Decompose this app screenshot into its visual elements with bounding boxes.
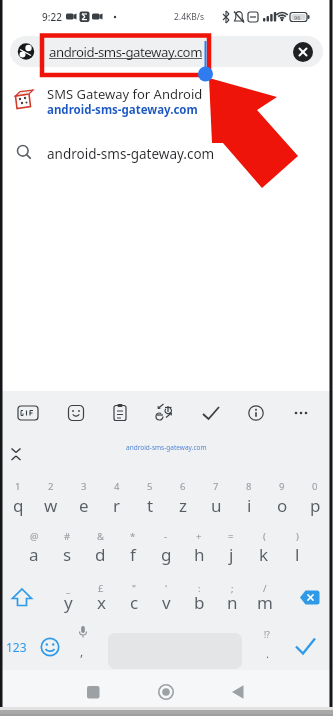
button[interactable]: android-sms-gateway.com (10, 36, 323, 67)
button[interactable]: k (248, 540, 280, 568)
button[interactable]: SMS Gateway for Android (0, 80, 333, 124)
staticText: p (310, 494, 321, 517)
button[interactable] (240, 399, 272, 427)
staticText: £ (98, 582, 104, 595)
button[interactable]: android-sms-gateway.com (0, 138, 333, 168)
button[interactable] (149, 399, 181, 427)
staticText: ; (231, 582, 234, 595)
button[interactable]: y (52, 588, 84, 616)
staticText: / (263, 582, 267, 595)
staticText: 9 (279, 480, 285, 493)
staticText: = (228, 530, 234, 543)
button[interactable] (228, 682, 248, 702)
staticText: + (196, 530, 202, 543)
button[interactable]: c (118, 588, 150, 616)
staticText: z (179, 494, 187, 517)
button[interactable] (195, 399, 227, 427)
staticText: j (229, 543, 234, 566)
button[interactable] (104, 399, 136, 427)
button[interactable]: p (299, 491, 331, 519)
staticText: 5 (147, 480, 153, 493)
button[interactable]: w (35, 491, 67, 519)
staticText: a (29, 543, 39, 566)
button[interactable] (84, 682, 104, 702)
staticText: 7 (213, 480, 219, 493)
staticText: 9:22 (42, 10, 62, 24)
staticText: : (198, 582, 201, 595)
button[interactable]: g (150, 540, 182, 568)
staticText: 123 (6, 639, 27, 655)
staticText: @ (30, 530, 39, 543)
button[interactable]: j (215, 540, 247, 568)
staticText: ) (296, 530, 299, 543)
staticText: android-sms-gateway.com (47, 102, 198, 118)
button[interactable] (156, 682, 176, 702)
staticText: h (194, 543, 205, 566)
staticText: g (161, 543, 172, 566)
staticText: ' (165, 582, 168, 595)
button[interactable]: o (266, 491, 298, 519)
staticText: s (63, 543, 72, 566)
button[interactable]: a (18, 540, 50, 568)
staticText: 8 (246, 480, 252, 493)
button[interactable]: v (150, 588, 182, 616)
staticText: - (164, 530, 168, 543)
button[interactable]: f (117, 540, 149, 568)
staticText: 96 (294, 14, 301, 21)
button[interactable]: b (183, 588, 215, 616)
staticText: 2.4KB/s (174, 11, 205, 23)
button[interactable]: n (216, 588, 248, 616)
staticText: . (266, 646, 269, 661)
staticText: k (259, 543, 269, 566)
staticText: o (277, 494, 288, 517)
button[interactable]: e (68, 491, 100, 519)
button[interactable]: 123 (1, 633, 31, 661)
button[interactable] (285, 399, 317, 427)
staticText: c (130, 591, 139, 614)
button[interactable] (292, 583, 326, 613)
button[interactable]: t (134, 491, 166, 519)
staticText: e (79, 494, 89, 517)
button[interactable]: i (233, 491, 265, 519)
button[interactable]: z (167, 491, 199, 519)
button[interactable]: q (2, 491, 34, 519)
button[interactable]: h (183, 540, 215, 568)
staticText: y (64, 591, 73, 614)
button[interactable]: l (281, 540, 313, 568)
button[interactable] (292, 633, 322, 661)
button[interactable]: m (249, 588, 281, 616)
button[interactable]: r (101, 491, 133, 519)
staticText: n (227, 591, 238, 614)
button[interactable]: u (200, 491, 232, 519)
staticText: t (147, 494, 154, 517)
staticText: l (295, 543, 300, 566)
staticText: android-sms-gateway.com (126, 443, 207, 452)
button[interactable]: , (66, 637, 98, 665)
button[interactable]: s (51, 540, 83, 568)
staticText: android-sms-gateway.com (47, 145, 215, 163)
staticText: 3 (81, 480, 87, 493)
button[interactable]: . (251, 639, 283, 667)
staticText: w (44, 494, 58, 517)
button[interactable] (12, 399, 44, 427)
button[interactable]: d (84, 540, 116, 568)
staticText: !? (264, 629, 270, 640)
staticText: m (257, 591, 273, 614)
staticText: x (97, 591, 106, 614)
button[interactable] (60, 399, 92, 427)
staticText: ( (263, 530, 266, 543)
button[interactable] (293, 42, 313, 62)
staticText: 4 (114, 480, 120, 493)
staticText: v (162, 591, 171, 614)
button[interactable]: x (85, 588, 117, 616)
button[interactable] (38, 635, 62, 659)
staticText: & (97, 530, 104, 543)
button[interactable] (6, 583, 40, 613)
staticText: # (64, 530, 71, 543)
staticText: b (194, 591, 205, 614)
staticText: f (130, 543, 136, 566)
staticText: android-sms-gateway.com (49, 43, 203, 61)
staticText: 1 (15, 480, 21, 493)
staticText: , (80, 643, 84, 659)
